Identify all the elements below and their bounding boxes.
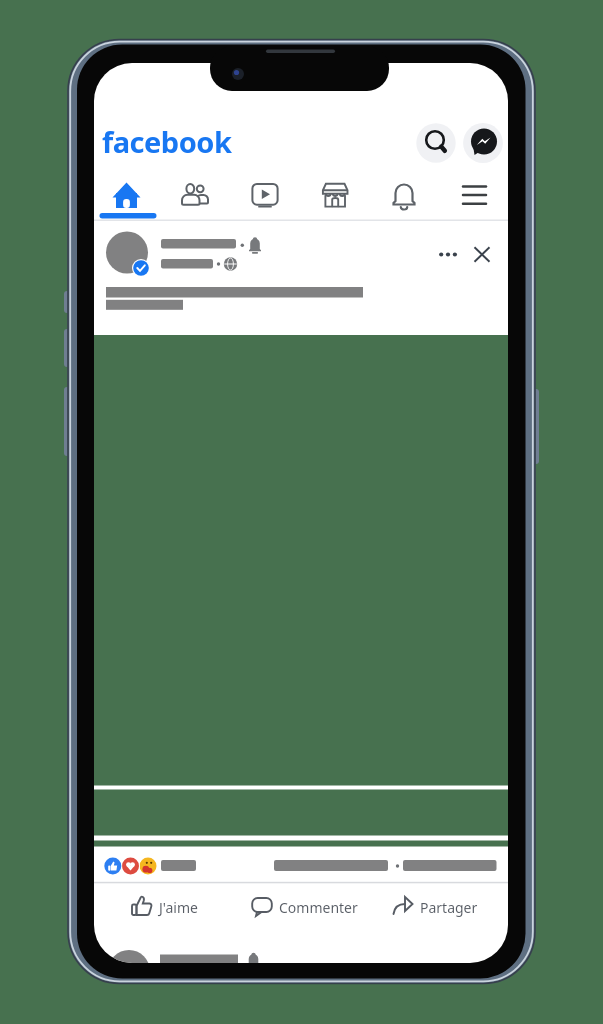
button[interactable]	[301, 172, 370, 220]
button[interactable]	[163, 172, 232, 220]
staticText: J'aime	[159, 898, 198, 917]
button[interactable]	[380, 886, 484, 928]
staticText: Partager	[420, 898, 478, 917]
button[interactable]	[463, 123, 503, 163]
button[interactable]	[232, 172, 301, 220]
staticText: Commenter	[279, 898, 358, 917]
button[interactable]	[370, 172, 439, 220]
button[interactable]	[238, 886, 362, 928]
button[interactable]	[466, 239, 494, 267]
button[interactable]	[94, 172, 163, 220]
staticText: facebook	[102, 122, 232, 161]
button[interactable]	[416, 123, 456, 163]
button[interactable]	[439, 172, 508, 220]
button[interactable]	[118, 886, 214, 928]
button[interactable]	[430, 240, 460, 268]
